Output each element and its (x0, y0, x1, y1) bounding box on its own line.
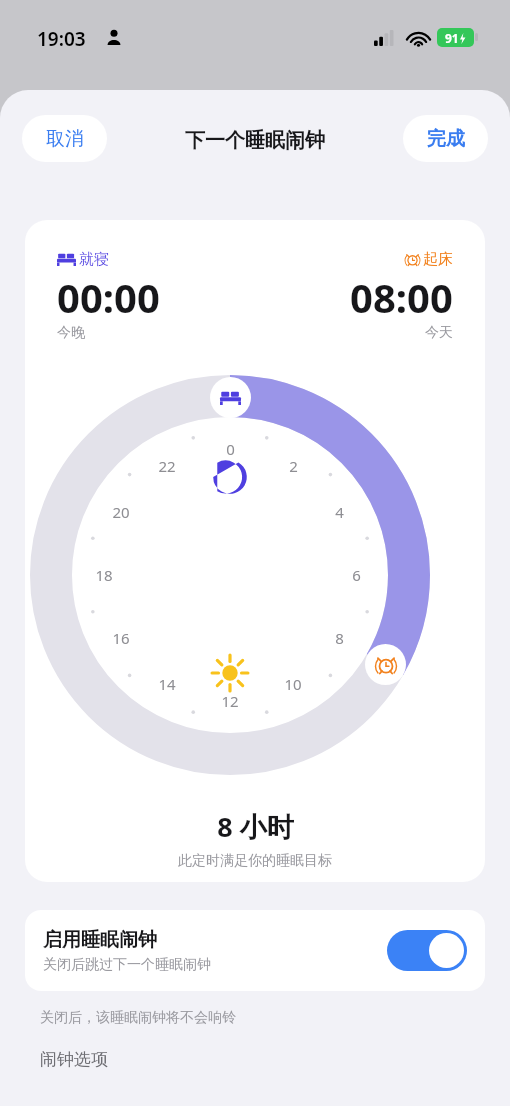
staticText: 闹钟选项 (40, 1049, 108, 1070)
staticText: 20 (112, 502, 130, 522)
staticText: 起床 (423, 250, 453, 269)
staticText: 18 (95, 565, 113, 585)
button[interactable]: 启用睡眠闹钟 (25, 910, 485, 991)
staticText: 00:00 (57, 270, 160, 324)
staticText: 22 (158, 456, 176, 476)
staticText: 今晚 (57, 324, 85, 342)
staticText: 12 (221, 691, 239, 711)
button[interactable]: 完成 (403, 115, 488, 162)
staticText: 关闭后，该睡眠闹钟将不会响铃 (40, 1009, 236, 1027)
staticText: 启用睡眠闹钟 (43, 928, 157, 952)
staticText: 0 (226, 439, 235, 459)
staticText: 10 (284, 674, 302, 694)
button[interactable]: 取消 (22, 115, 107, 162)
staticText: 此定时满足你的睡眠目标 (178, 852, 332, 870)
staticText: 08:00 (350, 270, 453, 324)
staticText: 8 (335, 628, 344, 648)
button[interactable]: Wake up handle (365, 644, 406, 685)
staticText: 2 (289, 456, 298, 476)
staticText: 14 (158, 674, 176, 694)
button[interactable]: Sleep schedule dial (30, 375, 430, 775)
staticText: 16 (112, 628, 130, 648)
staticText: 取消 (46, 127, 84, 151)
staticText: 19:03 (37, 26, 86, 52)
staticText: 4 (335, 502, 344, 522)
button[interactable]: Bedtime handle (210, 377, 251, 418)
staticText: 下一个睡眠闹钟 (185, 128, 325, 153)
staticText: 完成 (427, 127, 465, 151)
staticText: 91 (445, 30, 459, 46)
staticText: 关闭后跳过下一个睡眠闹钟 (43, 956, 211, 974)
staticText: 就寝 (79, 250, 109, 269)
staticText: 8 小时 (217, 808, 294, 845)
staticText: 6 (352, 565, 361, 585)
button[interactable]: Enable sleep alarm toggle (387, 930, 467, 971)
staticText: 今天 (425, 324, 453, 342)
